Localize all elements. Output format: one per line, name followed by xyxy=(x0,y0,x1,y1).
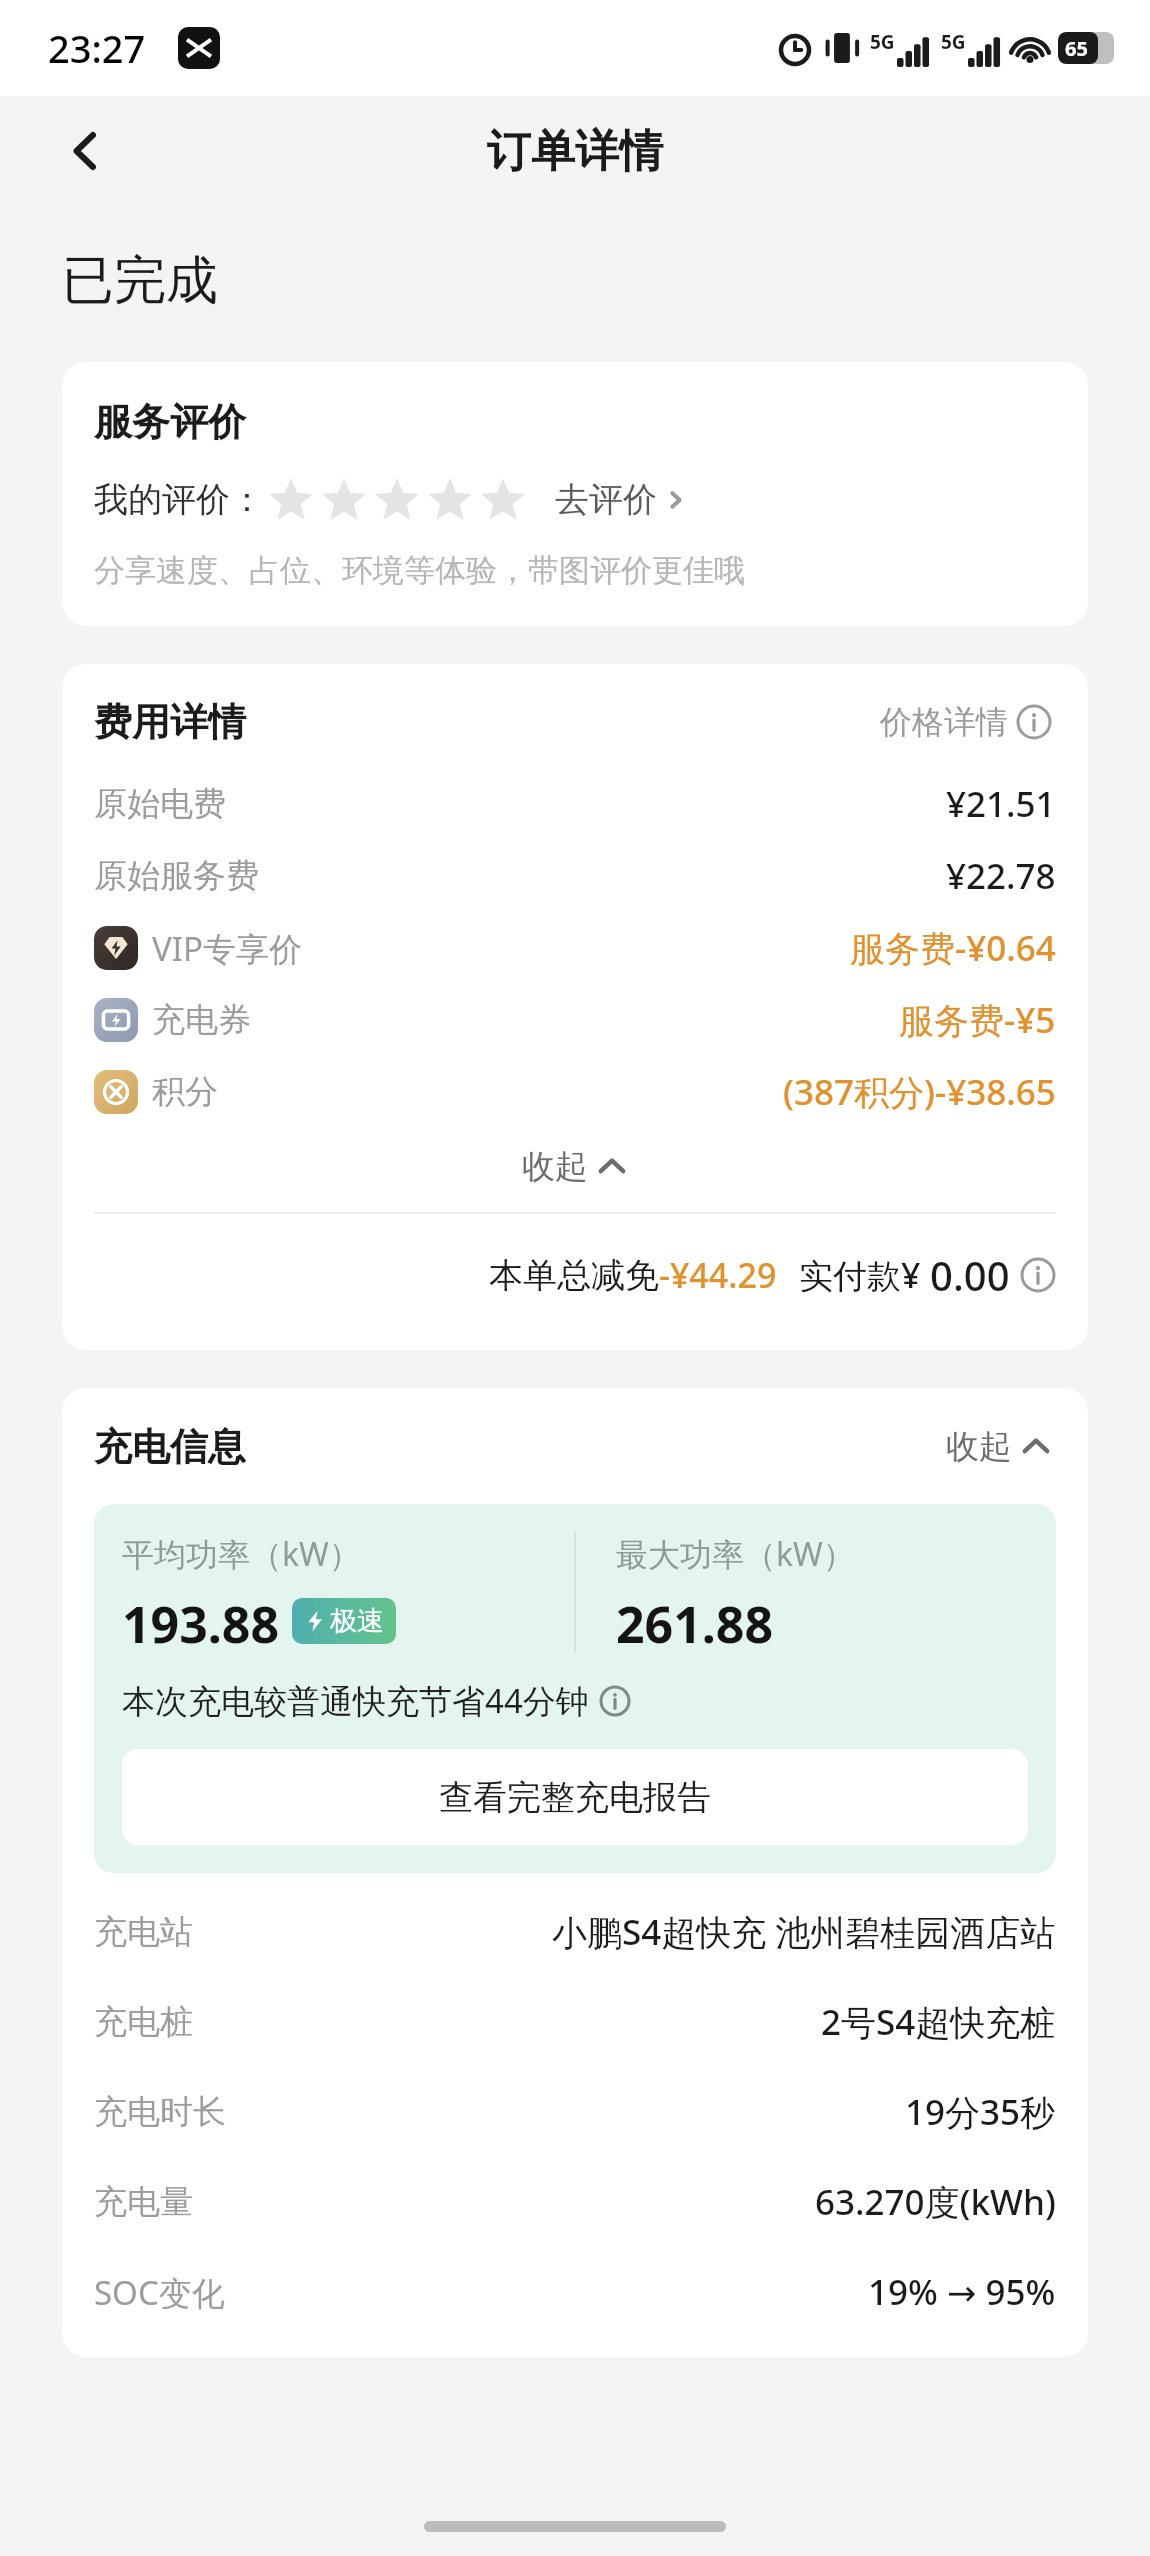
staticText: 261.88 xyxy=(616,1590,774,1652)
staticText: 65 xyxy=(1065,35,1088,62)
staticText: 收起 xyxy=(946,1426,1012,1468)
staticText: 充电站 xyxy=(94,1911,193,1953)
staticText: 63.270度(kWh) xyxy=(815,2178,1056,2226)
staticText: 193.88 xyxy=(122,1590,280,1652)
staticText: 分享速度、占位、环境等体验，带图评价更佳哦 xyxy=(94,551,745,590)
button[interactable]: 查看完整充电报告 xyxy=(122,1749,1028,1845)
staticText: 原始电费 xyxy=(94,783,226,825)
staticText: 0.00 xyxy=(930,1248,1010,1302)
button[interactable]: 去评价 xyxy=(551,474,693,525)
button[interactable]: Back xyxy=(46,112,124,190)
staticText: 充电信息 xyxy=(94,1423,246,1471)
staticText: VIP专享价 xyxy=(152,926,302,971)
staticText: ¥21.51 xyxy=(946,780,1056,828)
staticText: 5G xyxy=(941,29,966,55)
staticText: 23:27 xyxy=(48,22,146,74)
staticText: 查看完整充电报告 xyxy=(439,1776,711,1819)
staticText: 充电券 xyxy=(152,999,251,1041)
staticText: 去评价 xyxy=(555,478,657,521)
staticText: SOC变化 xyxy=(94,2270,225,2315)
staticText: 极速 xyxy=(330,1604,384,1638)
staticText: -¥44.29 xyxy=(659,1252,777,1298)
staticText: 服务费-¥0.64 xyxy=(850,924,1056,972)
staticText: ¥22.78 xyxy=(946,852,1056,900)
staticText: (387积分)-¥38.65 xyxy=(783,1068,1056,1116)
staticText: 收起 xyxy=(522,1146,588,1188)
staticText: 19分35秒 xyxy=(905,2088,1056,2136)
staticText: 充电时长 xyxy=(94,2091,226,2133)
button[interactable]: 收起 xyxy=(942,1422,1056,1472)
button[interactable]: 价格详情 xyxy=(876,698,1056,746)
staticText: 订单详情 xyxy=(487,124,663,179)
staticText: 充电量 xyxy=(94,2181,193,2223)
staticText: 充电桩 xyxy=(94,2001,193,2043)
staticText: 本次充电较普通快充节省44分钟 xyxy=(122,1678,589,1723)
staticText: 小鹏S4超快充 池州碧桂园酒店站 xyxy=(552,1908,1056,1956)
staticText: 实付款¥ xyxy=(799,1252,930,1298)
staticText: 19% → 95% xyxy=(868,2268,1056,2316)
staticText: 5G xyxy=(870,29,895,55)
staticText: 最大功率（kW） xyxy=(616,1532,855,1576)
staticText: 平均功率（kW） xyxy=(122,1532,361,1576)
staticText: 本单总减免 xyxy=(489,1254,659,1297)
staticText: 费用详情 xyxy=(94,698,246,746)
staticText: 积分 xyxy=(152,1071,218,1113)
button[interactable]: 收起 xyxy=(94,1128,1056,1206)
staticText: 已完成 xyxy=(62,248,218,314)
staticText: 价格详情 xyxy=(880,702,1008,742)
staticText: 服务评价 xyxy=(94,398,246,446)
staticText: 服务费-¥5 xyxy=(899,996,1056,1044)
staticText: 2号S4超快充桩 xyxy=(821,1998,1056,2046)
staticText: 原始服务费 xyxy=(94,855,259,897)
staticText: 我的评价： xyxy=(94,478,264,521)
